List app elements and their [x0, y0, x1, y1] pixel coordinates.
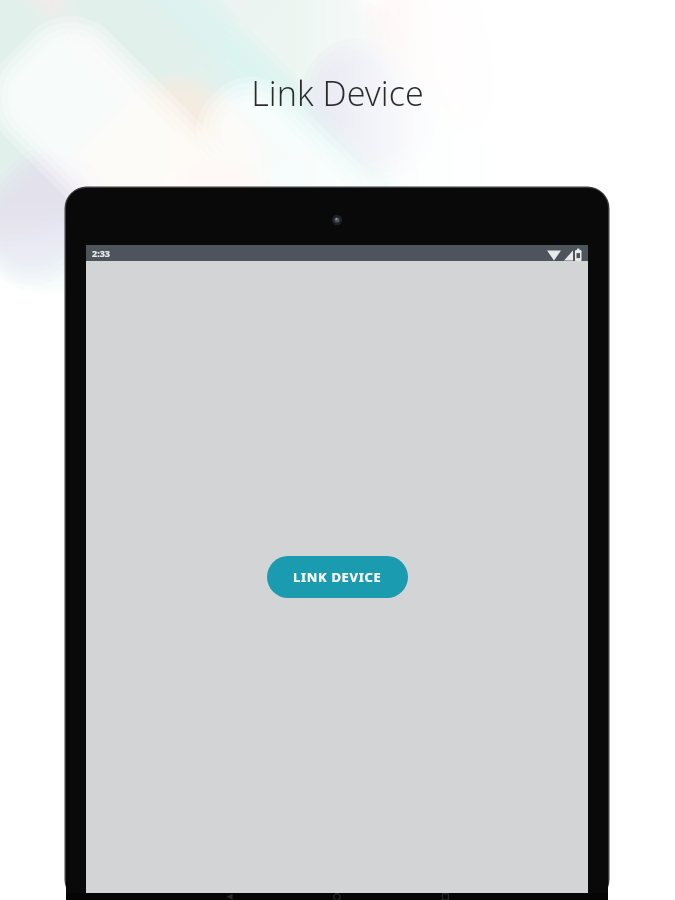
button[interactable]: LINK DEVICE	[267, 556, 408, 598]
staticText: LINK DEVICE	[293, 568, 382, 586]
staticText: 2:33	[92, 247, 110, 259]
staticText: Link Device	[0, 70, 675, 116]
